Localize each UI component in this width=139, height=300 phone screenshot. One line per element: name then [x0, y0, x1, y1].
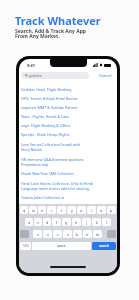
button[interactable]: Love Stories Collection:Compli with Stor… [21, 139, 115, 154]
staticText: search [99, 244, 109, 248]
button[interactable]: s [34, 218, 42, 226]
staticText: a [28, 220, 31, 225]
staticText: goibibo [29, 73, 42, 78]
button[interactable]: b [73, 230, 82, 238]
staticText: h [75, 220, 78, 225]
button[interactable]: Yatra - Flights, Hotels & Cabs [21, 112, 115, 121]
button[interactable]: space [32, 242, 91, 250]
staticText: 123 [23, 244, 29, 248]
button[interactable]: Tuitora Jokes Collection in [21, 193, 115, 202]
button[interactable]: Diwali New Year SMS Collection [21, 169, 115, 178]
button[interactable]: t [57, 206, 66, 214]
staticText: space [57, 244, 66, 248]
staticText: Yatra - Flights, Hotels & Cabs [21, 114, 70, 119]
staticText: l [106, 220, 107, 225]
staticText: Track Whatever [15, 13, 101, 28]
staticText: y [71, 208, 73, 213]
staticText: SpiceJet - Book Cheap Flights [21, 132, 70, 137]
button[interactable]: n [83, 230, 92, 238]
staticText: f [56, 220, 58, 225]
staticText: k [96, 220, 98, 225]
button[interactable]: 123 [20, 242, 31, 250]
button[interactable]: search [92, 242, 116, 250]
staticText: n [86, 232, 89, 237]
button[interactable]: w [29, 206, 37, 214]
button[interactable]: u [77, 206, 86, 214]
button[interactable]: m [93, 230, 102, 238]
button[interactable]: o [97, 206, 106, 214]
staticText: u [80, 208, 83, 213]
button[interactable]: p [107, 206, 116, 214]
staticText: 9:41 [27, 63, 35, 68]
staticText: d [46, 220, 49, 225]
button[interactable]: c [53, 230, 62, 238]
button[interactable]: ixigomm: MMT & Goibibo Partner [21, 103, 115, 112]
staticText: o [100, 208, 103, 213]
button[interactable]: OYO: Search & Book Hotel Rooms [21, 94, 115, 103]
button[interactable]: SpiceJet - Book Cheap Flights [21, 130, 115, 139]
staticText: OYO: Search & Book Hotel Rooms [21, 96, 78, 101]
staticText: w [32, 208, 35, 213]
staticText: r [51, 208, 53, 213]
button[interactable]: l [102, 218, 111, 226]
staticText: Hindi Love Stories Collection: Only In H… [21, 181, 93, 191]
button[interactable]: v [63, 230, 72, 238]
staticText: Goibibo: Hotel, Flight Booking [21, 87, 72, 92]
button[interactable]: k [92, 218, 101, 226]
button[interactable]: Backspace [107, 230, 116, 238]
button[interactable]: x [43, 230, 52, 238]
button[interactable]: g [62, 218, 71, 226]
button[interactable]: ixigo: Flight Booking & Offers [21, 121, 115, 130]
staticText: t [61, 208, 63, 213]
staticText: Tuitora Jokes Collection in [21, 195, 65, 200]
staticText: HR interview Q&A:Interview quetions Prep… [21, 157, 84, 167]
staticText: q [23, 208, 26, 213]
button[interactable]: q [20, 206, 28, 214]
button[interactable]: f [52, 218, 61, 226]
staticText: Search, Add & Track Any App From Any Mar… [15, 28, 86, 40]
button[interactable]: Shift [20, 230, 29, 238]
button[interactable]: j [82, 218, 91, 226]
staticText: e [41, 208, 44, 213]
staticText: Cancel [99, 73, 112, 78]
button[interactable]: goibibo [21, 72, 89, 79]
button[interactable]: r [47, 206, 56, 214]
staticText: Diwali New Year SMS Collection [21, 171, 74, 176]
button[interactable]: e [38, 206, 46, 214]
staticText: ixigo: Flight Booking & Offers [21, 123, 71, 128]
staticText: g [65, 220, 68, 225]
staticText: i [91, 208, 92, 213]
button[interactable]: Hindi Love Stories Collection: Only In H… [21, 178, 115, 193]
staticText: v [67, 232, 69, 237]
button[interactable]: i [87, 206, 96, 214]
button[interactable]: Goibibo: Hotel, Flight Booking [21, 85, 115, 94]
button[interactable]: z [33, 230, 42, 238]
button[interactable]: Cancel [98, 72, 113, 79]
button[interactable]: d [43, 218, 51, 226]
staticText: p [110, 208, 113, 213]
staticText: m [96, 232, 100, 237]
button[interactable]: y [67, 206, 76, 214]
staticText: Love Stories Collection:Compli with Stor… [21, 142, 81, 152]
staticText: c [57, 232, 59, 237]
button[interactable]: h [72, 218, 81, 226]
staticText: j [86, 220, 87, 225]
staticText: x [47, 232, 49, 237]
staticText: z [37, 232, 39, 237]
staticText: ixigomm: MMT & Goibibo Partner [21, 105, 78, 110]
button[interactable]: HR interview Q&A:Interview quetions Prep… [21, 154, 115, 169]
staticText: b [76, 232, 79, 237]
staticText: s [37, 220, 39, 225]
button[interactable]: a [25, 218, 33, 226]
